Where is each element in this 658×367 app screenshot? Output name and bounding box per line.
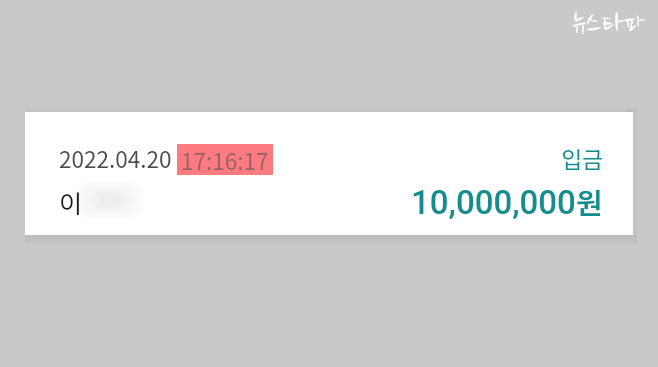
staticText: 17:16:17 (181, 144, 269, 175)
staticText: 이 (59, 184, 83, 220)
staticText: 원 (576, 180, 603, 222)
button[interactable]: 2022.04.20 (25, 112, 633, 235)
staticText: 입금 (533, 142, 603, 175)
staticText: 뉴스타파 (572, 9, 646, 40)
staticText: 2022.04.20 (59, 142, 177, 175)
staticText: 10,000,000 (411, 183, 576, 222)
